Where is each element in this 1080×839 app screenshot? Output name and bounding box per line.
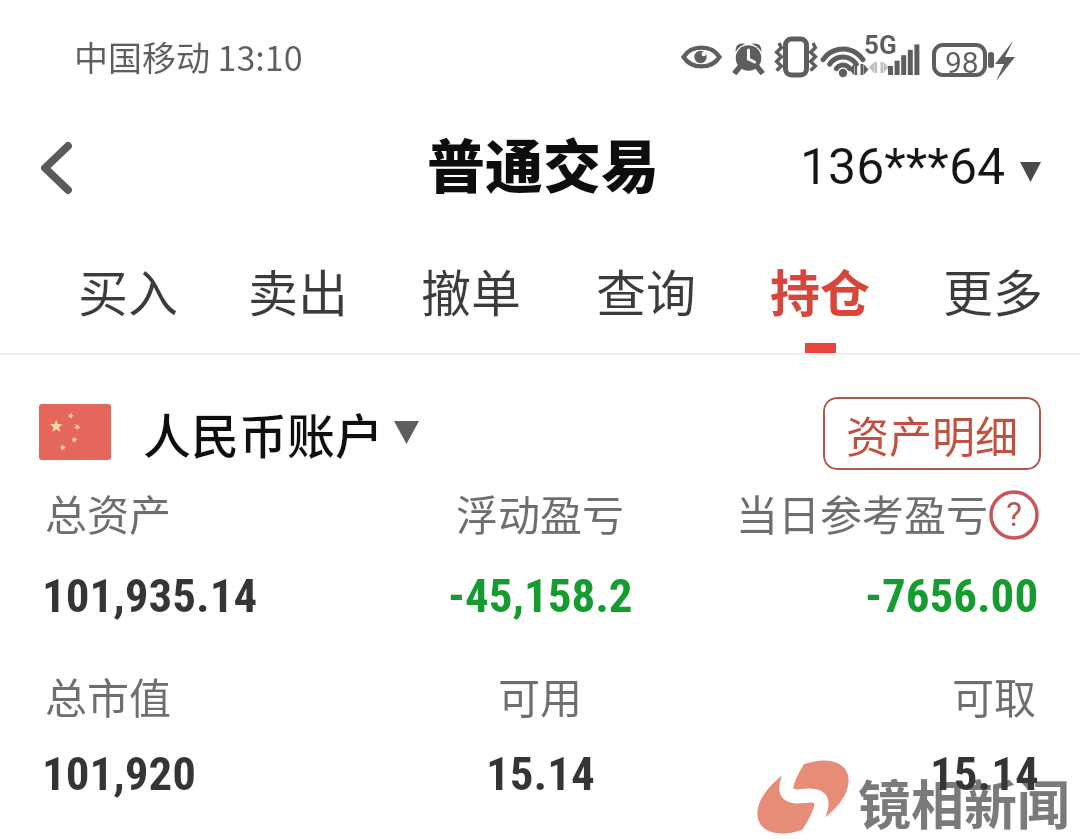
- staticText: 持仓: [770, 254, 870, 326]
- staticText: 当日参考盈亏: [736, 482, 989, 543]
- button[interactable]: 卖出: [218, 234, 378, 342]
- staticText: -7656.00: [865, 568, 1039, 623]
- staticText: 普通交易: [427, 121, 660, 205]
- staticText: 人民币账户: [143, 398, 384, 466]
- staticText: 中国移动 13:10: [74, 32, 303, 81]
- staticText: -45,158.2: [448, 568, 633, 623]
- staticText: 15.14: [486, 746, 595, 801]
- staticText: 浮动盈亏: [456, 482, 625, 543]
- staticText: 总市值: [45, 665, 172, 726]
- staticText: ?: [1006, 494, 1023, 534]
- staticText: 98: [945, 45, 979, 80]
- button[interactable]: 资产明细: [823, 397, 1041, 470]
- staticText: 101,935.14: [42, 568, 258, 623]
- staticText: 卖出: [248, 254, 348, 326]
- button[interactable]: 撤单: [391, 234, 551, 342]
- staticText: 镜相新闻: [858, 764, 1070, 839]
- staticText: 撤单: [421, 254, 521, 326]
- button[interactable]: 更多: [913, 234, 1073, 342]
- staticText: 更多: [943, 254, 1043, 326]
- button[interactable]: 人民币账户: [39, 398, 419, 466]
- staticText: 136***64: [800, 138, 1006, 197]
- button[interactable]: 136***64: [800, 138, 1041, 197]
- staticText: 5G: [864, 30, 897, 60]
- button[interactable]: 买入: [48, 234, 208, 342]
- button[interactable]: 查询: [566, 234, 726, 342]
- staticText: 101,920: [42, 746, 197, 801]
- staticText: 总资产: [45, 482, 172, 543]
- staticText: 可取: [952, 665, 1037, 726]
- staticText: 资产明细: [846, 403, 1018, 465]
- button[interactable]: Back: [12, 124, 100, 212]
- staticText: 可用: [498, 665, 583, 726]
- button[interactable]: 持仓: [740, 234, 900, 342]
- staticText: 查询: [596, 254, 696, 326]
- staticText: 15.14: [930, 746, 1039, 801]
- staticText: 买入: [78, 254, 178, 326]
- button[interactable]: Help: [989, 490, 1039, 540]
